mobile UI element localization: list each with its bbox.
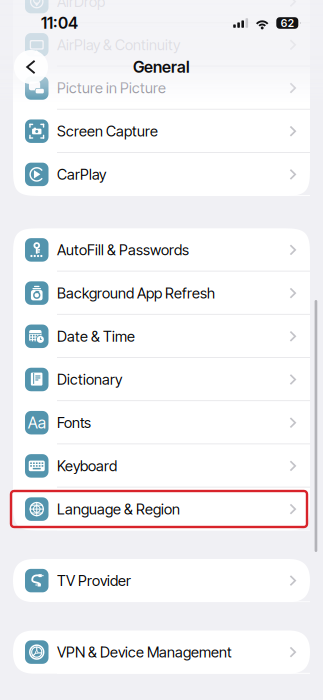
staticText: Picture in Picture — [57, 79, 166, 97]
staticText: Fonts — [57, 414, 91, 431]
button[interactable]: Keyboard — [13, 444, 310, 487]
staticText: AirDrop — [57, 0, 105, 10]
button[interactable]: Aa — [13, 401, 310, 444]
button[interactable]: VPN & Device Management — [13, 630, 310, 674]
button[interactable]: Back — [14, 50, 48, 84]
staticText: Dictionary — [57, 371, 122, 388]
button[interactable]: Picture in Picture — [13, 66, 310, 110]
staticText: Keyboard — [57, 457, 117, 475]
button[interactable]: Date & Time — [13, 315, 310, 358]
staticText: AirPlay & Continuity — [57, 36, 180, 54]
button[interactable]: Dictionary — [13, 358, 310, 401]
button[interactable]: AirDrop — [13, 0, 310, 23]
staticText: Background App Refresh — [57, 284, 215, 302]
button[interactable]: CarPlay — [13, 153, 310, 196]
staticText: AutoFill & Passwords — [57, 241, 189, 259]
staticText: General — [133, 57, 190, 77]
button[interactable]: Language & Region — [13, 487, 310, 531]
staticText: CarPlay — [57, 165, 106, 183]
staticText: VPN & Device Management — [57, 643, 232, 661]
button[interactable]: Background App Refresh — [13, 271, 310, 315]
staticText: 62 — [281, 16, 294, 29]
staticText: TV Provider — [57, 572, 131, 589]
button[interactable]: AirPlay & Continuity — [13, 23, 310, 66]
staticText: Screen Capture — [57, 122, 158, 140]
staticText: Language & Region — [57, 500, 180, 518]
staticText: 11:04 — [41, 13, 78, 33]
button[interactable]: AutoFill & Passwords — [13, 228, 310, 271]
staticText: Date & Time — [57, 327, 135, 345]
staticText: Aa — [28, 413, 46, 432]
button[interactable]: TV Provider — [13, 559, 310, 602]
button[interactable]: Screen Capture — [13, 110, 310, 153]
